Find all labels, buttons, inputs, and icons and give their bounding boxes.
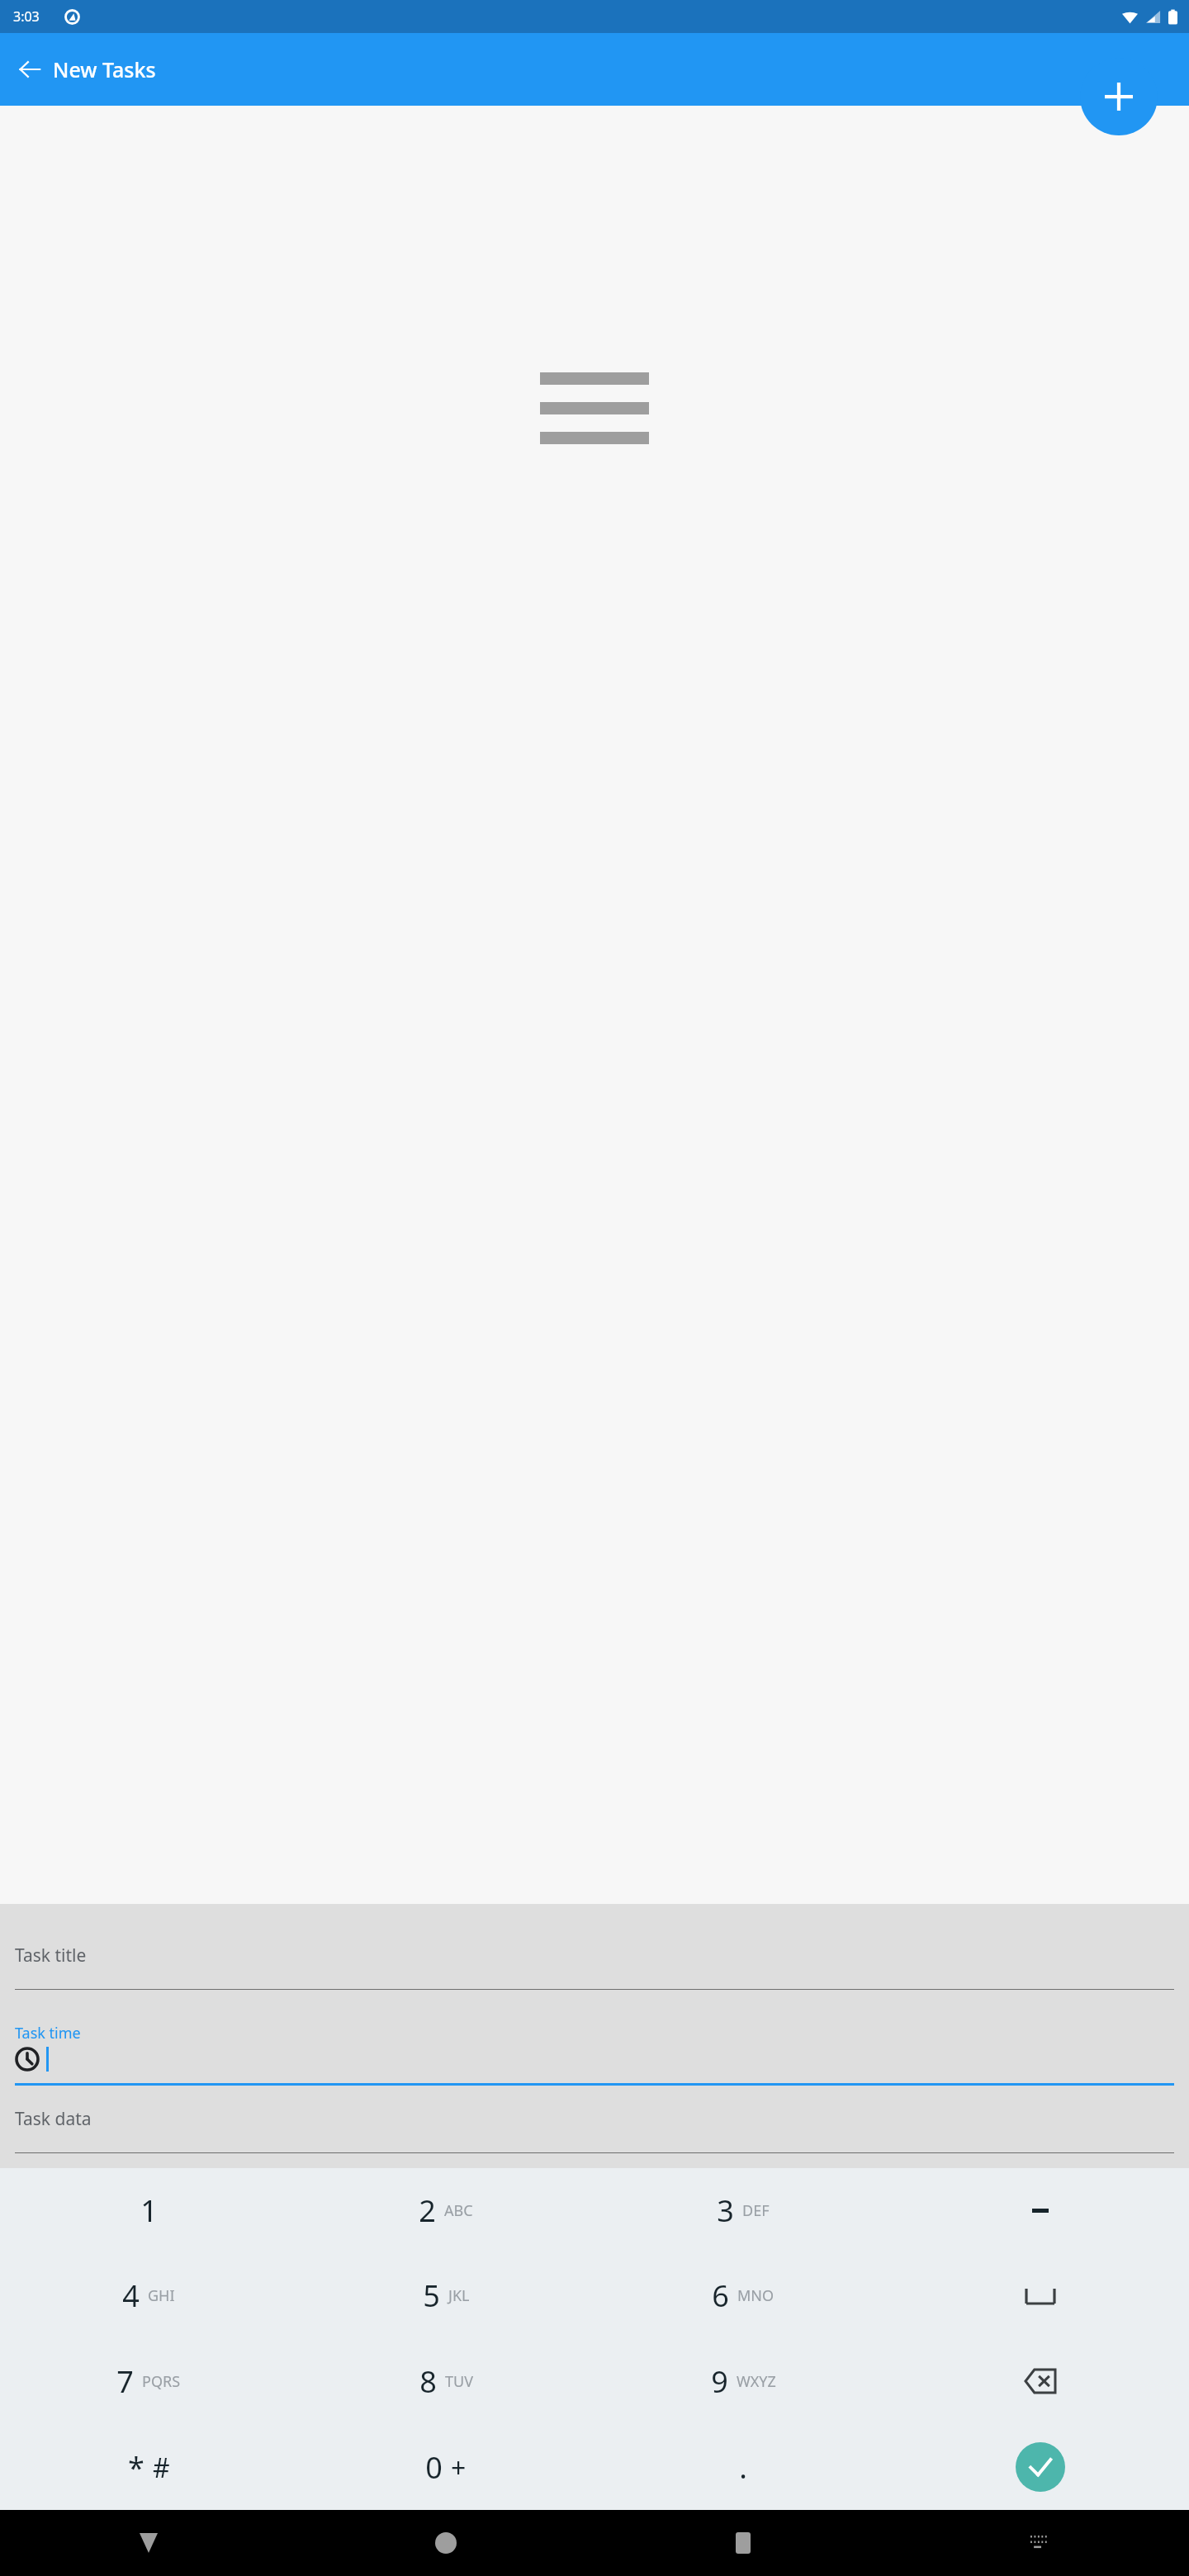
button[interactable]: Home [297,2510,594,2576]
button[interactable]: 7 [0,2338,297,2424]
staticText: New Tasks [53,55,156,83]
button[interactable]: 3 [594,2168,892,2253]
button[interactable]: Backspace [892,2338,1189,2424]
button[interactable]: 6 [594,2253,892,2338]
button[interactable]: 5 [297,2253,594,2338]
button[interactable]: Back [7,46,53,92]
button[interactable]: Back [0,2510,297,2576]
staticText: Task title [15,1944,87,1968]
button[interactable]: 4 [0,2253,297,2338]
staticText: 7 [116,2361,134,2402]
staticText: 6 [712,2275,729,2316]
button[interactable]: - [892,2168,1189,2253]
staticText: PQRS [142,2371,181,2392]
button[interactable]: 9 [594,2338,892,2424]
staticText: Task time [15,2023,81,2043]
staticText: 3 [717,2190,734,2231]
button[interactable]: Space [892,2253,1189,2338]
button[interactable]: * [0,2424,297,2510]
staticText: # [153,2450,170,2486]
button[interactable]: Task title [15,1944,1174,1990]
staticText: TUV [445,2371,473,2392]
staticText: JKL [448,2285,470,2306]
staticText: Task data [15,2107,92,2131]
staticText: 9 [711,2361,728,2402]
staticText: 5 [423,2275,440,2316]
button[interactable]: 8 [297,2338,594,2424]
staticText: . [739,2447,747,2488]
button[interactable]: 2 [297,2168,594,2253]
staticText: DEF [742,2200,770,2221]
staticText: 0 [425,2447,443,2488]
button[interactable]: . [594,2424,892,2510]
button[interactable]: Task time [15,2023,1174,2086]
staticText: * [128,2447,144,2488]
staticText: WXYZ [737,2371,776,2392]
button[interactable]: Switch keyboard [892,2510,1189,2576]
staticText: + [451,2450,467,2486]
staticText: GHI [148,2285,175,2306]
staticText: ABC [444,2200,473,2221]
staticText: 8 [419,2361,437,2402]
staticText: 4 [122,2275,140,2316]
button[interactable]: 0 [297,2424,594,2510]
staticText: 3:03 [13,7,40,26]
button[interactable]: Task data [15,2107,1174,2153]
staticText: 2 [419,2190,436,2231]
staticText: 1 [140,2190,158,2231]
button[interactable]: Recents [594,2510,892,2576]
button[interactable]: 1 [0,2168,297,2253]
button[interactable]: Add task [1080,58,1158,135]
button[interactable]: Done [892,2424,1189,2510]
staticText: MNO [737,2285,775,2306]
